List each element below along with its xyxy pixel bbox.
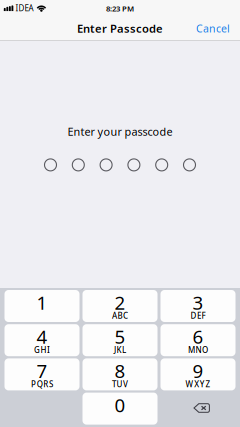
- staticText: IDEA: [15, 3, 33, 14]
- staticText: 8: [114, 358, 125, 383]
- staticText: 4: [36, 324, 47, 349]
- button[interactable]: 4: [4, 324, 79, 356]
- staticText: JKL: [114, 344, 126, 355]
- staticText: 5: [114, 324, 125, 349]
- button[interactable]: Cancel: [186, 16, 240, 41]
- staticText: DEF: [190, 310, 206, 321]
- staticText: PQRS: [31, 379, 53, 390]
- staticText: WXYZ: [186, 379, 210, 390]
- button[interactable]: 6: [160, 324, 235, 356]
- button[interactable]: 1: [4, 290, 79, 322]
- button[interactable]: 8: [82, 358, 157, 390]
- button[interactable]: 2: [82, 290, 157, 322]
- staticText: Enter your passcode: [67, 124, 172, 139]
- staticText: MNO: [188, 344, 208, 355]
- button[interactable]: 9: [160, 358, 235, 390]
- staticText: 7: [36, 358, 47, 383]
- staticText: 3: [192, 290, 203, 315]
- staticText: TUV: [112, 379, 128, 390]
- staticText: Enter Passcode: [77, 21, 163, 36]
- button[interactable]: 3: [160, 290, 235, 322]
- staticText: 9: [192, 358, 203, 383]
- button[interactable]: 7: [4, 358, 79, 390]
- staticText: Cancel: [196, 21, 230, 36]
- staticText: 8:23 PM: [106, 3, 134, 14]
- staticText: 0: [114, 392, 125, 418]
- staticText: 1: [36, 290, 47, 315]
- staticText: 6: [192, 324, 203, 349]
- staticText: 2: [114, 290, 125, 315]
- button[interactable]: 0: [82, 393, 157, 425]
- button[interactable]: 5: [82, 324, 157, 356]
- button[interactable]: Delete: [160, 393, 235, 425]
- staticText: ABC: [112, 310, 128, 321]
- staticText: GHI: [34, 344, 50, 355]
